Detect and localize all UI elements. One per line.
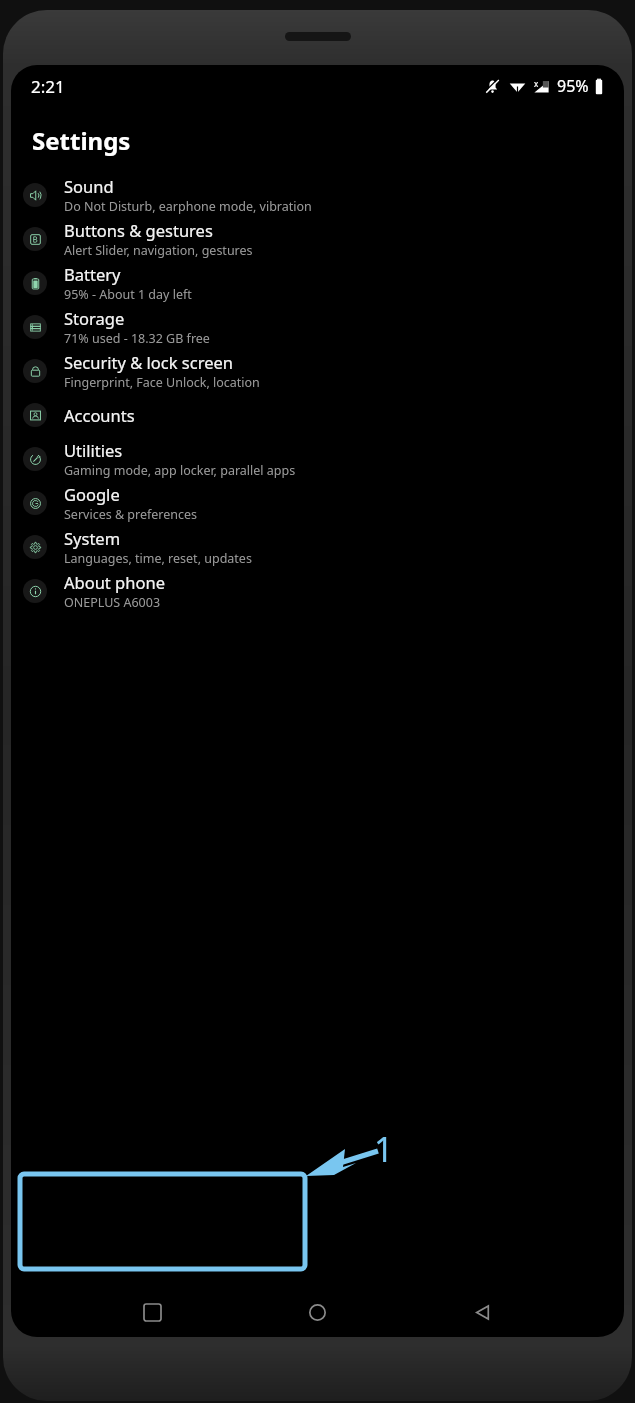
staticText: Storage — [64, 307, 125, 329]
button[interactable]: Recent apps — [129, 1289, 175, 1335]
staticText: Accounts — [64, 404, 135, 426]
button[interactable]: Battery — [11, 261, 624, 305]
button[interactable]: Back — [459, 1289, 505, 1335]
staticText: Sound — [64, 175, 114, 197]
staticText: System — [64, 527, 121, 549]
button[interactable]: Accounts — [11, 393, 624, 437]
staticText: 2:21 — [31, 75, 65, 98]
button[interactable]: Sound — [11, 173, 624, 217]
staticText: Buttons & gestures — [64, 219, 213, 241]
staticText: Services & preferences — [64, 506, 198, 523]
staticText: Languages, time, reset, updates — [64, 550, 252, 567]
staticText: Alert Slider, navigation, gestures — [64, 242, 253, 259]
staticText: 1 — [374, 1126, 394, 1172]
staticText: Security & lock screen — [64, 351, 233, 373]
staticText: About phone — [64, 571, 165, 593]
staticText: Fingerprint, Face Unlock, location — [64, 374, 260, 391]
staticText: Gaming mode, app locker, parallel apps — [64, 462, 296, 479]
button[interactable]: Home — [294, 1289, 340, 1335]
staticText: Settings — [32, 124, 131, 157]
button[interactable]: Buttons & gestures — [11, 217, 624, 261]
staticText: Utilities — [64, 439, 123, 461]
button[interactable]: Security & lock screen — [11, 349, 624, 393]
staticText: 71% used - 18.32 GB free — [64, 330, 210, 347]
staticText: x — [534, 78, 539, 89]
staticText: Google — [64, 483, 120, 505]
staticText: Do Not Disturb, earphone mode, vibration — [64, 198, 312, 215]
button[interactable]: Google — [11, 481, 624, 525]
button[interactable]: Utilities — [11, 437, 624, 481]
button[interactable]: About phone — [11, 569, 624, 613]
button[interactable]: System — [11, 525, 624, 569]
staticText: ONEPLUS A6003 — [64, 594, 161, 611]
staticText: Battery — [64, 263, 121, 285]
staticText: 95% - About 1 day left — [64, 286, 192, 303]
button[interactable]: Storage — [11, 305, 624, 349]
staticText: 95% — [557, 75, 589, 97]
